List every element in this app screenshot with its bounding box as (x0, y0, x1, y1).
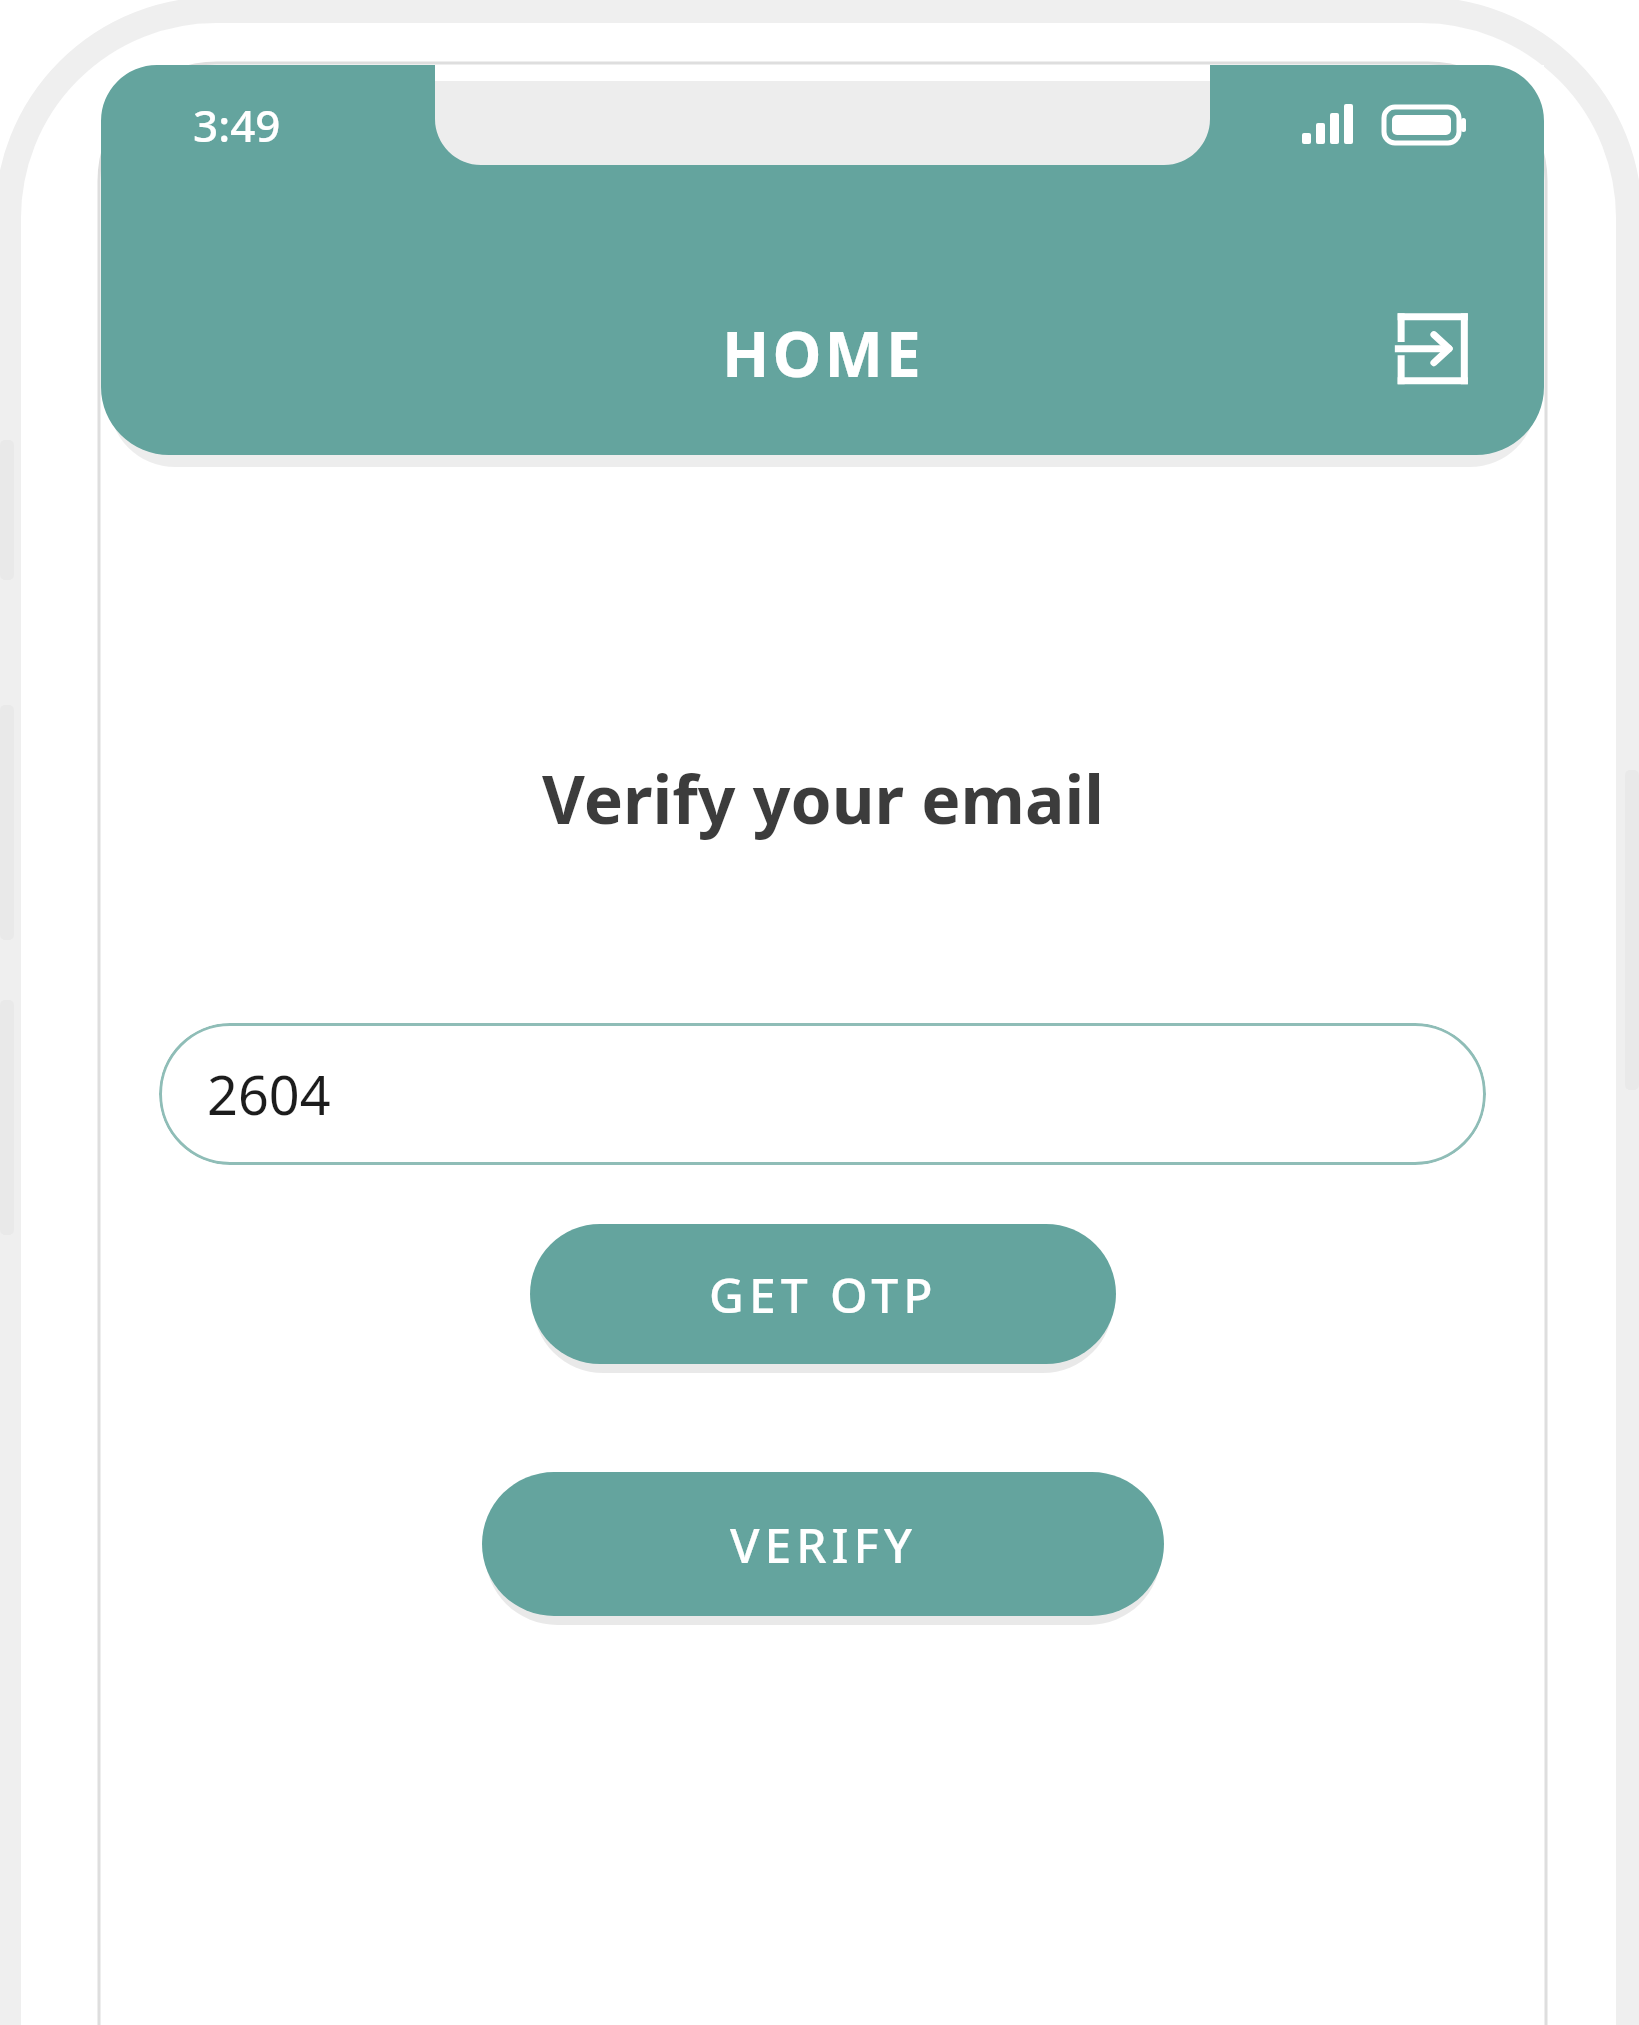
staticText: 2604 (207, 1057, 331, 1131)
button[interactable]: VERIFY (482, 1472, 1164, 1616)
button[interactable]: Logout (1374, 295, 1486, 407)
button[interactable]: GET OTP (530, 1224, 1116, 1364)
staticText: HOME (722, 311, 924, 395)
staticText: 3:49 (193, 95, 281, 155)
button[interactable]: 2604 (159, 1023, 1486, 1165)
staticText: Verify your email (542, 753, 1104, 843)
staticText: GET OTP (709, 1262, 938, 1327)
staticText: VERIFY (730, 1512, 917, 1577)
